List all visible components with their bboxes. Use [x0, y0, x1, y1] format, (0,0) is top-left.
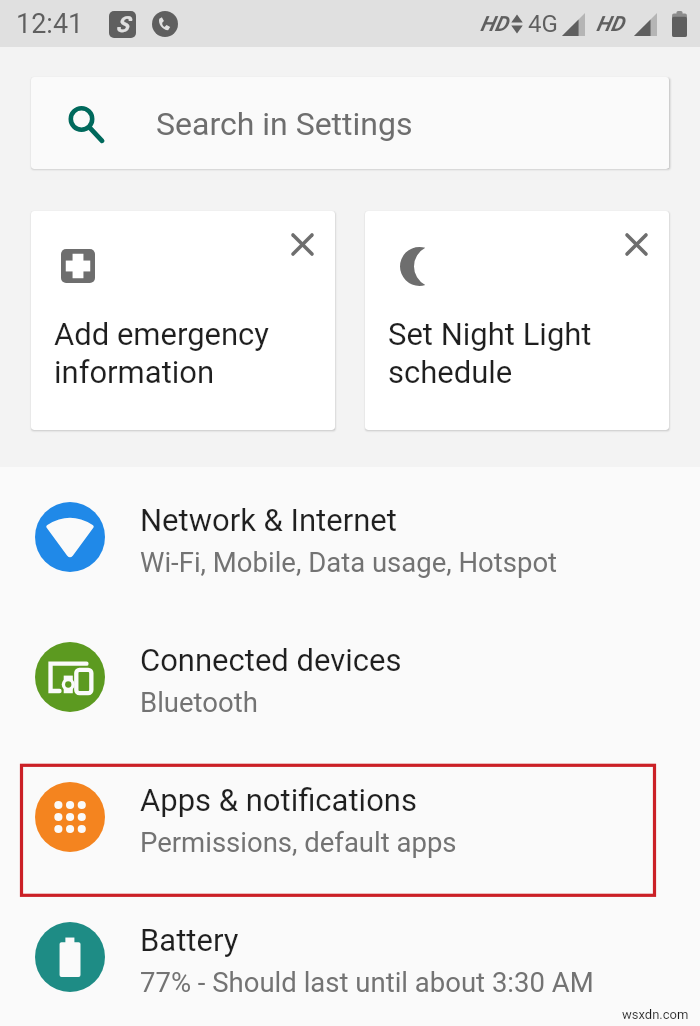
button[interactable]: Dismiss suggestion: [281, 223, 323, 265]
staticText: S: [116, 12, 130, 38]
staticText: wsxdn.com: [622, 1007, 689, 1022]
staticText: 4G: [528, 10, 558, 38]
button[interactable]: Dismiss suggestion: [615, 223, 657, 265]
button[interactable]: Apps & notifications: [0, 747, 700, 887]
staticText: Battery: [140, 922, 239, 958]
staticText: 77% - Should last until about 3:30 AM: [140, 966, 594, 998]
staticText: Network & Internet: [140, 502, 397, 538]
staticText: Apps & notifications: [140, 782, 417, 818]
staticText: Search in Settings: [156, 105, 413, 143]
staticText: HD: [480, 12, 508, 37]
button[interactable]: Dismiss suggestion: [31, 211, 335, 430]
staticText: 12:41: [16, 8, 84, 40]
staticText: Permissions, default apps: [140, 826, 457, 858]
staticText: Bluetooth: [140, 686, 258, 718]
button[interactable]: Network & Internet: [0, 467, 700, 607]
staticText: Set Night Light schedule: [388, 316, 592, 391]
button[interactable]: Connected devices: [0, 607, 700, 747]
button[interactable]: Search in Settings: [31, 77, 669, 169]
staticText: HD: [596, 12, 624, 37]
button[interactable]: Dismiss suggestion: [365, 211, 669, 430]
staticText: Wi-Fi, Mobile, Data usage, Hotspot: [140, 546, 558, 578]
button[interactable]: Battery: [0, 887, 700, 1026]
staticText: Connected devices: [140, 642, 402, 678]
staticText: Add emergency information: [54, 316, 270, 391]
